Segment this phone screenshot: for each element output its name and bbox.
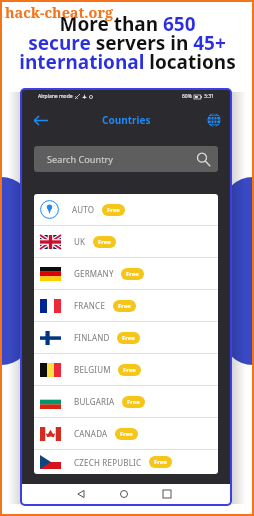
staticText: Search Country	[47, 153, 113, 166]
staticText: Free	[120, 430, 133, 438]
staticText: AUTO	[72, 204, 95, 215]
button[interactable]: Select server	[206, 112, 222, 128]
staticText: GERMANY	[74, 268, 114, 279]
button[interactable]: AUTO	[34, 194, 218, 225]
staticText: international locations	[19, 54, 236, 73]
button[interactable]: Search Country	[34, 146, 218, 172]
staticText: 60%	[182, 93, 192, 100]
staticText: UK	[74, 236, 86, 247]
staticText: Free	[98, 238, 111, 246]
staticText: Free	[127, 398, 140, 406]
staticText: Free	[118, 302, 131, 310]
button[interactable]: FRANCE	[34, 290, 218, 321]
button[interactable]: Home	[114, 484, 134, 504]
button[interactable]: Back	[71, 484, 91, 504]
button[interactable]: Back	[31, 112, 49, 128]
button[interactable]: CZECH REPUBLIC	[34, 450, 218, 474]
staticText: FINLAND	[74, 332, 110, 343]
button[interactable]: Recent apps	[157, 484, 177, 504]
staticText: Free	[107, 206, 120, 214]
staticText: Countries	[102, 113, 151, 127]
button[interactable]: UK	[34, 226, 218, 257]
staticText: hack-cheat.org	[5, 3, 113, 23]
staticText: More than 650	[59, 16, 196, 35]
button[interactable]: BELGIUM	[34, 354, 218, 385]
staticText: Free	[122, 334, 135, 342]
button[interactable]: BULGARIA	[34, 386, 218, 417]
staticText: Free	[123, 366, 136, 374]
staticText: FRANCE	[74, 300, 106, 311]
staticText: CANADA	[74, 428, 108, 439]
staticText: Airplane mode	[38, 93, 73, 100]
button[interactable]: FINLAND	[34, 322, 218, 353]
staticText: BULGARIA	[74, 396, 115, 407]
button[interactable]: CANADA	[34, 418, 218, 449]
button[interactable]: GERMANY	[34, 258, 218, 289]
staticText: BELGIUM	[74, 364, 111, 375]
staticText: Free	[154, 458, 167, 466]
staticText: secure servers in 45+	[28, 35, 226, 54]
staticText: Free	[126, 270, 139, 278]
staticText: 3:31	[204, 93, 214, 100]
staticText: CZECH REPUBLIC	[74, 457, 142, 468]
